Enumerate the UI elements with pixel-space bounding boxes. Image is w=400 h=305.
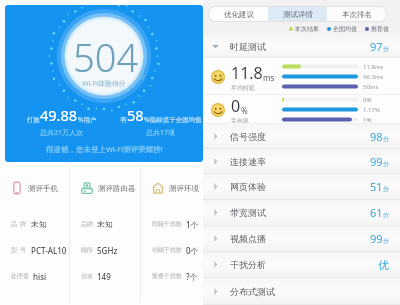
staticText: 信道 (81, 272, 93, 280)
staticText: 型 号 (11, 246, 27, 254)
staticText: 11.8ms (363, 63, 384, 71)
staticText: 98 (370, 129, 383, 144)
button[interactable]: 连接速率 (212, 149, 389, 173)
staticText: 46.3ms (363, 73, 384, 81)
staticText: 优 (378, 258, 389, 272)
staticText: %用户 (78, 115, 97, 124)
staticText: 平均时延 (231, 84, 255, 92)
staticText: 5GHz (97, 245, 118, 256)
button[interactable]: 测试详情 (268, 7, 327, 21)
staticText: ?个 (186, 271, 198, 282)
staticText: 50ms (363, 83, 379, 91)
staticText: 测评路由器 (98, 184, 136, 193)
staticText: ms (263, 72, 275, 83)
staticText: 总共17项 (146, 128, 176, 138)
button[interactable]: 分布式测试 (212, 278, 389, 304)
staticText: 测试详情 (283, 10, 313, 19)
button[interactable]: 干扰分析 (212, 252, 389, 277)
staticText: 504 (73, 31, 139, 83)
staticText: 分 (139, 72, 146, 81)
other: Good result (211, 103, 225, 117)
staticText: 同频干扰数 (152, 220, 182, 228)
staticText: 分 (383, 160, 389, 168)
staticText: 58 (127, 105, 144, 125)
staticText: 全国均值 (333, 25, 357, 33)
staticText: 时延测试 (230, 41, 266, 52)
staticText: 分 (383, 211, 389, 219)
button[interactable]: 测评手机 (11, 182, 58, 194)
staticText: 分 (383, 45, 389, 53)
staticText: 分 (383, 135, 389, 143)
staticText: 推荐值 (371, 25, 389, 33)
button[interactable]: 时延测试 (212, 36, 389, 57)
staticText: 149 (97, 271, 111, 282)
staticText: 99 (370, 231, 383, 246)
staticText: PCT-AL10 (31, 245, 67, 256)
button[interactable]: 测评环境 (152, 182, 199, 194)
staticText: 频段 (81, 246, 93, 254)
staticText: 本次结果 (295, 25, 319, 33)
staticText: 品牌 (81, 220, 93, 228)
staticText: 重叠干扰数 (152, 272, 182, 280)
staticText: 分 (383, 237, 389, 245)
staticText: 99 (370, 154, 383, 169)
button[interactable]: 信号强度 (212, 124, 389, 148)
staticText: 品 牌 (11, 220, 27, 228)
staticText: 分 (383, 185, 389, 193)
staticText: 未知 (97, 219, 113, 229)
staticText: 邻频干扰数 (152, 246, 182, 254)
staticText: 61 (370, 205, 383, 220)
staticText: hisi (33, 271, 47, 282)
staticText: 测评环境 (169, 184, 199, 193)
staticText: % (241, 105, 248, 116)
staticText: 丢包率 (231, 117, 249, 124)
staticText: 很遗憾，您未登上Wi-Fi测评荣耀榜! (46, 144, 163, 154)
staticText: Wi-Fi体验得分 (82, 79, 127, 89)
staticText: 11.8 (231, 62, 263, 84)
staticText: 本次排名 (342, 10, 372, 19)
staticText: 0 (231, 95, 241, 117)
staticText: 处理器 (11, 272, 29, 280)
staticText: 分布式测试 (230, 286, 275, 297)
staticText: 1% (363, 116, 372, 124)
staticText: 0% (363, 96, 372, 104)
staticText: 总共21万人次 (40, 128, 84, 138)
staticText: 51 (370, 179, 383, 194)
staticText: 打败 (27, 116, 40, 124)
button[interactable]: 带宽测试 (212, 200, 389, 225)
staticText: 49.88 (40, 105, 78, 125)
staticText: 信号强度 (230, 131, 266, 142)
staticText: 未知 (31, 219, 47, 229)
staticText: 有 (120, 116, 127, 124)
staticText: 1.17% (363, 106, 380, 114)
button[interactable]: 本次排名 (327, 7, 386, 21)
staticText: 0个 (186, 245, 199, 256)
staticText: 优化建议 (224, 10, 254, 19)
staticText: 网页体验 (230, 181, 266, 192)
button[interactable]: 网页体验 (212, 174, 389, 199)
staticText: 视频点播 (230, 233, 266, 244)
staticText: %指标优于全国均值 (144, 115, 202, 124)
other: Good result (211, 70, 225, 84)
staticText: 干扰分析 (230, 259, 266, 270)
button[interactable]: 测评路由器 (81, 182, 136, 194)
staticText: 1个 (186, 219, 199, 230)
button[interactable]: 优化建议 (209, 7, 268, 21)
staticText: 97 (370, 39, 383, 54)
staticText: 带宽测试 (230, 207, 266, 218)
staticText: 连接速率 (230, 156, 266, 167)
button[interactable]: 视频点播 (212, 226, 389, 251)
staticText: 测评手机 (28, 184, 58, 193)
